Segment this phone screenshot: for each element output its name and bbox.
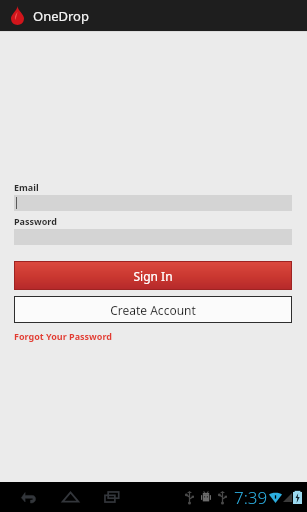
- button[interactable]: Sign In: [14, 261, 292, 290]
- staticText: 7:39: [234, 486, 268, 509]
- button[interactable]: Back: [12, 482, 44, 512]
- staticText: Sign In: [133, 268, 173, 284]
- staticText: Create Account: [110, 302, 196, 318]
- button[interactable]: Home: [54, 482, 86, 512]
- button[interactable]: [14, 195, 292, 211]
- button[interactable]: Recent apps: [96, 482, 128, 512]
- staticText: OneDrop: [33, 7, 89, 25]
- staticText: Password: [14, 215, 57, 227]
- staticText: Email: [14, 181, 39, 193]
- button[interactable]: Forgot Your Password: [14, 330, 112, 342]
- staticText: Forgot Your Password: [14, 330, 112, 342]
- button[interactable]: Create Account: [14, 296, 292, 323]
